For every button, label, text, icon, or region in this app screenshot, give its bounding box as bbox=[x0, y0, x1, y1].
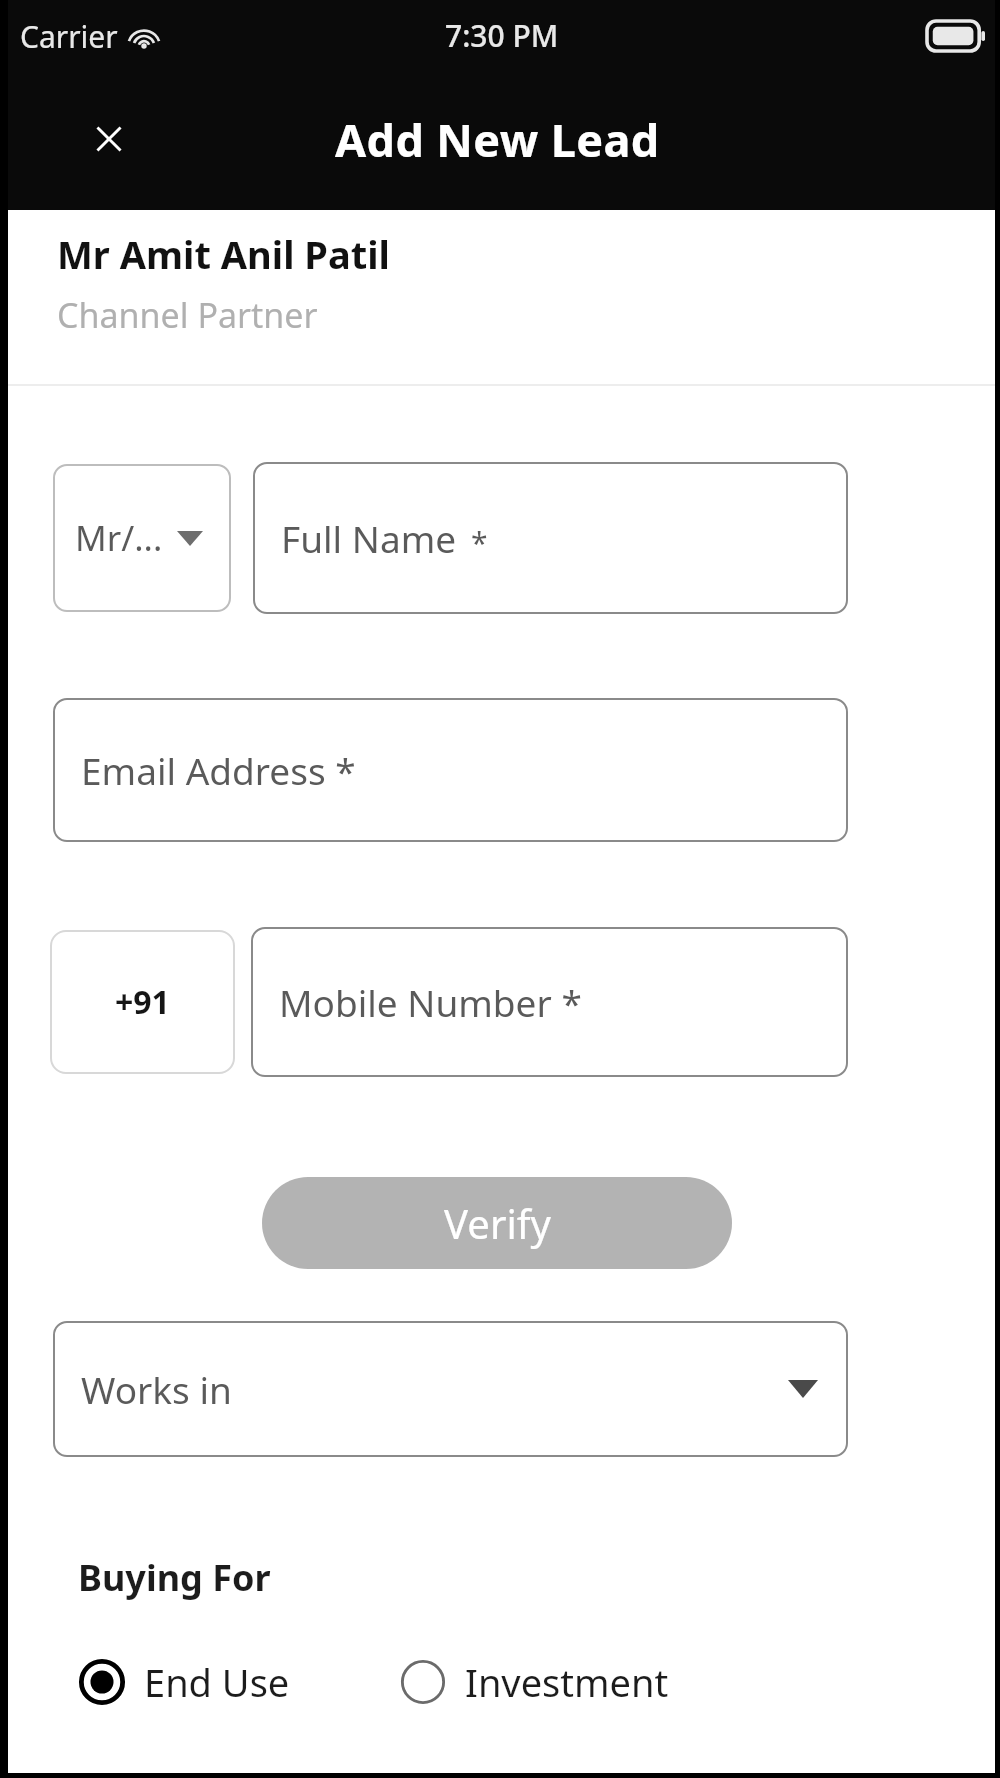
staticText: Email Address * bbox=[81, 745, 356, 795]
staticText: Mobile Number * bbox=[279, 977, 582, 1027]
staticText: Carrier bbox=[20, 16, 118, 57]
staticText: Mr Amit Anil Patil bbox=[57, 228, 390, 280]
staticText: 7:30 PM bbox=[445, 15, 559, 56]
button[interactable]: Investment bbox=[391, 1650, 677, 1714]
staticText: Add New Lead bbox=[335, 109, 660, 170]
staticText: Verify bbox=[444, 1196, 551, 1250]
staticText: Buying For bbox=[78, 1553, 271, 1602]
staticText: Mr/... bbox=[75, 514, 163, 562]
button[interactable]: Verify bbox=[262, 1177, 732, 1269]
staticText: * bbox=[471, 522, 488, 563]
staticText: +91 bbox=[115, 980, 170, 1024]
staticText: Channel Partner bbox=[57, 292, 318, 338]
button[interactable]: Email Address * bbox=[53, 698, 848, 842]
staticText: Works in bbox=[81, 1364, 232, 1414]
button[interactable]: +91 bbox=[50, 930, 235, 1074]
button[interactable]: Works in bbox=[53, 1321, 848, 1457]
button[interactable]: Close bbox=[66, 96, 152, 182]
button[interactable]: Full Name bbox=[253, 462, 848, 614]
button[interactable]: Mobile Number * bbox=[251, 927, 848, 1077]
staticText: End Use bbox=[144, 1656, 290, 1708]
staticText: Full Name bbox=[281, 513, 457, 563]
button[interactable]: Mr/... bbox=[53, 464, 231, 612]
button[interactable]: End Use bbox=[70, 1650, 298, 1714]
staticText: Investment bbox=[465, 1656, 669, 1708]
